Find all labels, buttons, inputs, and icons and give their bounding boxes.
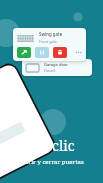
button[interactable]: More options <box>74 48 83 57</box>
button[interactable]: Swing gate <box>13 28 86 61</box>
button[interactable]: Garage door <box>22 59 92 76</box>
button[interactable]: Close <box>53 47 67 58</box>
button[interactable]: Open <box>17 47 31 58</box>
staticText: Front gate <box>39 39 57 44</box>
button[interactable]: Pause <box>35 47 49 58</box>
staticText: Garage door <box>44 62 68 67</box>
staticText: Swing gate <box>39 31 63 37</box>
staticText: Closed <box>44 68 55 73</box>
staticText: Abrir y cerrar puertas <box>20 158 84 166</box>
staticText: Un clic <box>29 136 75 155</box>
